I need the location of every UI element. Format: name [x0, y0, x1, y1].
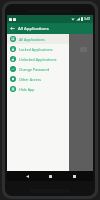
- staticText: Other Access: [19, 77, 41, 82]
- button[interactable]: Change Password: [7, 64, 69, 74]
- button[interactable]: Recent apps: [70, 172, 78, 180]
- button[interactable]: Other Access: [7, 74, 69, 84]
- staticText: Unlocked Applications: [19, 57, 57, 62]
- button[interactable]: Back: [23, 172, 31, 180]
- button[interactable]: All Applications: [7, 34, 69, 44]
- staticText: Locked Applications: [19, 47, 53, 52]
- staticText: Hide App: [19, 87, 35, 92]
- button[interactable]: Back: [7, 23, 18, 34]
- staticText: All Applications: [19, 37, 45, 42]
- button[interactable]: Unlocked Applications: [7, 54, 69, 64]
- staticText: All Applications: [18, 26, 49, 32]
- staticText: Change Password: [19, 67, 50, 72]
- button[interactable]: Home: [46, 172, 54, 180]
- button[interactable]: Hide App: [7, 84, 69, 94]
- button[interactable]: Locked Applications: [7, 44, 69, 54]
- staticText: 3:41: [84, 17, 91, 21]
